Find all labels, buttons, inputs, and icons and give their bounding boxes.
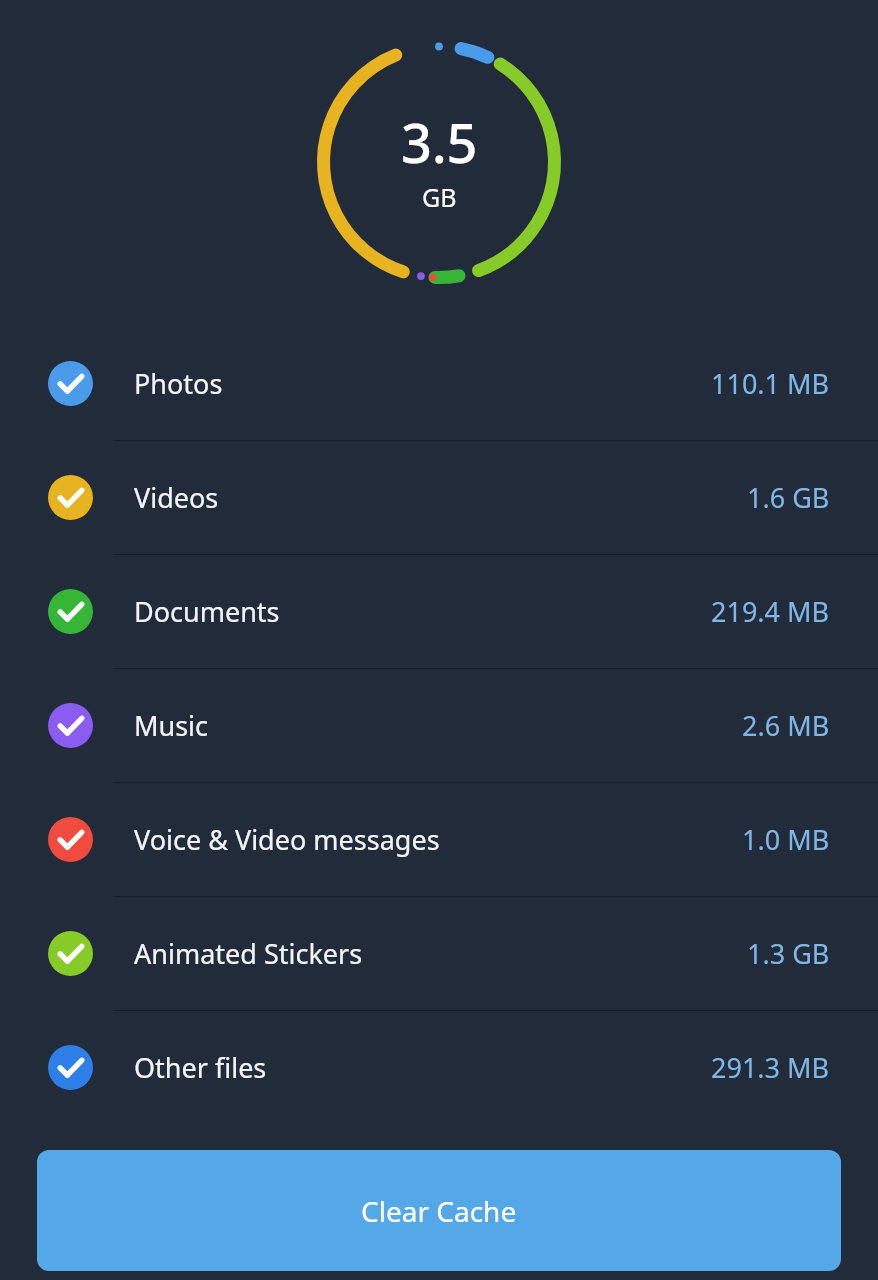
staticText: 2.6 MB (742, 707, 830, 744)
other: Voice & Video messages selected (48, 817, 93, 862)
staticText: Other files (134, 1049, 267, 1086)
other: Documents selected (48, 589, 93, 634)
staticText: Videos (134, 479, 219, 516)
staticText: 1.0 MB (742, 821, 830, 858)
staticText: GB (422, 180, 457, 214)
staticText: Animated Stickers (134, 935, 363, 972)
button[interactable]: Voice & Video messages selected (0, 783, 878, 896)
staticText: 110.1 MB (711, 365, 830, 402)
button[interactable]: Photos selected (0, 327, 878, 440)
staticText: Clear Cache (361, 1192, 517, 1230)
button[interactable]: Music selected (0, 669, 878, 782)
staticText: Music (134, 707, 209, 744)
staticText: Voice & Video messages (134, 821, 440, 858)
other: Music selected (48, 703, 93, 748)
other: Videos selected (48, 475, 93, 520)
button[interactable]: Documents selected (0, 555, 878, 668)
staticText: 1.6 GB (747, 479, 830, 516)
staticText: 1.3 GB (747, 935, 830, 972)
staticText: 291.3 MB (711, 1049, 830, 1086)
other: Photos selected (48, 361, 93, 406)
other: Animated Stickers selected (48, 931, 93, 976)
staticText: Documents (134, 593, 280, 630)
button[interactable]: Videos selected (0, 441, 878, 554)
button[interactable]: Other files selected (0, 1011, 878, 1124)
button[interactable]: Animated Stickers selected (0, 897, 878, 1010)
other: Other files selected (48, 1045, 93, 1090)
staticText: Photos (134, 365, 223, 402)
staticText: 3.5 (401, 105, 478, 179)
button[interactable]: Clear Cache (37, 1150, 841, 1271)
staticText: 219.4 MB (711, 593, 830, 630)
